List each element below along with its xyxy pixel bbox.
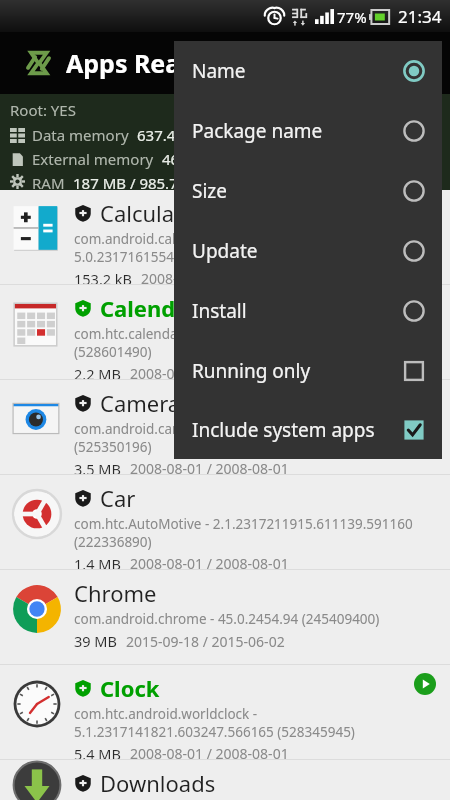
- staticText: 2015-09-18 / 2015-06-02: [126, 632, 285, 651]
- button[interactable]: Update: [174, 221, 442, 281]
- staticText: 2008-08-01 / 2008-08-01: [130, 554, 289, 569]
- button[interactable]: Package name: [174, 101, 442, 161]
- staticText: (528601490): [74, 343, 152, 361]
- staticText: 5.1.2317141821.603247.566165 (528345945): [74, 723, 355, 741]
- button[interactable]: Name: [174, 41, 442, 101]
- staticText: Clock: [100, 673, 160, 703]
- staticText: 2008-08-01 / 2008-08-01: [130, 744, 289, 759]
- staticText: Update: [192, 238, 258, 264]
- staticText: 2.2 MB: [74, 364, 121, 379]
- button[interactable]: Calculator: [0, 190, 450, 284]
- staticText: 5.0.2317161554 (501): [74, 248, 209, 266]
- staticText: com.android.camera - 5.2: [74, 420, 236, 438]
- button[interactable]: Running only: [174, 341, 442, 401]
- staticText: Car: [100, 483, 136, 513]
- staticText: Include system apps: [192, 417, 375, 443]
- staticText: Camera: [100, 388, 181, 418]
- button[interactable]: Open in Play Store: [414, 673, 436, 695]
- staticText: com.htc.android.worldclock -: [74, 705, 258, 723]
- staticText: External memory: [32, 149, 154, 169]
- staticText: 39 MB: [74, 631, 117, 651]
- staticText: Calendar: [100, 293, 199, 323]
- staticText: com.android.calculator2 -: [74, 230, 236, 248]
- staticText: Downloads: [100, 768, 216, 798]
- staticText: (222336890): [74, 533, 152, 551]
- staticText: Size: [192, 178, 227, 204]
- button[interactable]: Camera: [0, 380, 450, 474]
- staticText: 2008-08-01 / 2008-08-01: [130, 364, 289, 379]
- staticText: 153.2 kB: [74, 269, 132, 284]
- staticText: Chrome: [74, 578, 157, 608]
- staticText: 46: [162, 149, 180, 169]
- button[interactable]: Calendar: [0, 285, 450, 379]
- button[interactable]: Car: [0, 475, 450, 569]
- button[interactable]: Downloads: [0, 760, 450, 800]
- staticText: com.android.chrome - 45.0.2454.94 (24540…: [74, 610, 380, 628]
- staticText: Data memory: [32, 125, 129, 145]
- staticText: Package name: [192, 118, 323, 144]
- staticText: com.htc.AutoMotive - 2.1.2317211915.6111…: [74, 515, 413, 533]
- staticText: Running only: [192, 358, 311, 384]
- button[interactable]: Install: [174, 281, 442, 341]
- staticText: (525350196): [74, 438, 152, 456]
- staticText: 637.4: [137, 125, 176, 145]
- staticText: 2008-08-01 / 2008-08-01: [130, 459, 289, 474]
- staticText: Name: [192, 58, 246, 84]
- button[interactable]: Clock: [0, 665, 450, 759]
- staticText: 1.4 MB: [74, 554, 121, 569]
- staticText: 3.5 MB: [74, 459, 121, 474]
- button[interactable]: Include system apps: [174, 401, 442, 459]
- staticText: Calculator: [100, 198, 205, 228]
- staticText: 77%: [337, 7, 367, 27]
- staticText: 21:34: [398, 5, 442, 28]
- button[interactable]: Chrome: [0, 570, 450, 664]
- staticText: 5.4 MB: [74, 744, 121, 759]
- staticText: Install: [192, 298, 247, 324]
- button[interactable]: Size: [174, 161, 442, 221]
- staticText: com.htc.calendar - 5.1.2317: [74, 325, 249, 343]
- staticText: 187 MB / 985.7: [73, 173, 178, 190]
- staticText: Root: YES: [10, 100, 76, 120]
- staticText: Apps Reader: [66, 46, 223, 80]
- staticText: RAM: [32, 173, 65, 190]
- staticText: 2008-08-01 / 2008-08-01: [141, 269, 300, 284]
